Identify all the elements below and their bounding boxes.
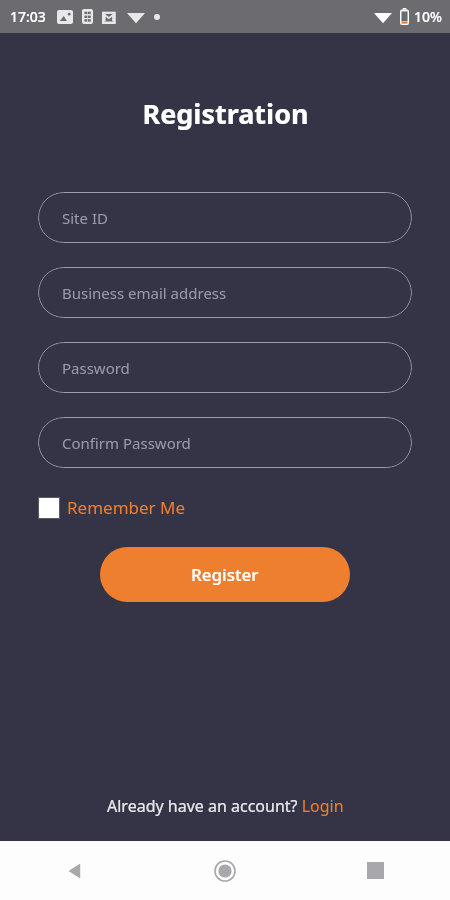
button[interactable]: Remember Me xyxy=(38,496,186,519)
staticText: Registration xyxy=(142,95,309,132)
staticText: Remember Me xyxy=(67,496,186,519)
staticText: Register xyxy=(191,563,259,586)
staticText: Confirm Password xyxy=(62,433,191,453)
button[interactable]: Back xyxy=(0,841,150,900)
staticText: 10% xyxy=(414,7,442,26)
button[interactable]: Business email address xyxy=(38,267,412,318)
button[interactable]: Site ID xyxy=(38,192,412,243)
staticText: Site ID xyxy=(62,208,108,228)
staticText: Password xyxy=(62,358,130,378)
button[interactable]: Confirm Password xyxy=(38,417,412,468)
staticText: Business email address xyxy=(62,283,227,303)
staticText: Already have an account? Login xyxy=(107,795,344,817)
button[interactable]: Password xyxy=(38,342,412,393)
button[interactable]: Register xyxy=(100,547,350,602)
button[interactable]: Home xyxy=(150,841,300,900)
staticText: 17:03 xyxy=(10,7,46,26)
button[interactable]: Already have an account? Login xyxy=(107,795,344,817)
button[interactable]: Recent apps xyxy=(300,841,450,900)
